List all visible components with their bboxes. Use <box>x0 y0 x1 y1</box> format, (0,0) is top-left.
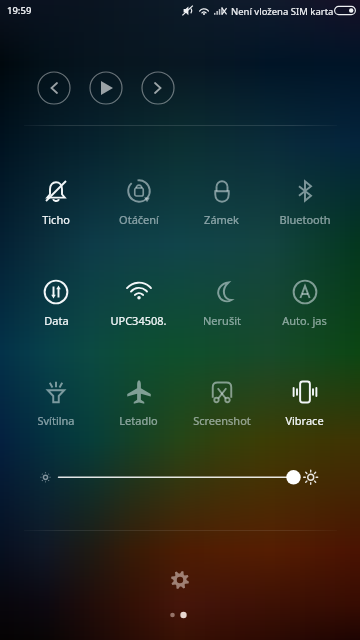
button[interactable]: Auto. jas <box>263 277 346 347</box>
button[interactable]: Bluetooth <box>263 176 346 246</box>
button[interactable]: Screenshot <box>180 377 263 447</box>
staticText: 19:59 <box>7 4 32 17</box>
button[interactable]: Nerušit <box>180 277 263 347</box>
staticText: Vibrace <box>285 413 324 428</box>
button[interactable]: UPC34508. <box>97 277 180 347</box>
staticText: Ticho <box>42 212 70 227</box>
button[interactable]: Vibrace <box>263 377 346 447</box>
staticText: Svítilna <box>37 413 75 428</box>
staticText: Letadlo <box>119 413 158 428</box>
staticText: Data <box>44 313 69 328</box>
button[interactable]: Svítilna <box>14 377 97 447</box>
button[interactable]: Letadlo <box>97 377 180 447</box>
button[interactable]: Next <box>142 72 174 104</box>
button[interactable]: Data <box>14 277 97 347</box>
button[interactable] <box>0 455 360 500</box>
staticText: Bluetooth <box>279 212 331 227</box>
staticText: Není vložena SIM karta <box>231 5 334 18</box>
staticText: UPC34508. <box>110 313 167 328</box>
staticText: Auto. jas <box>282 313 327 328</box>
button[interactable]: Zámek <box>180 176 263 246</box>
button[interactable]: Previous <box>38 72 70 104</box>
button[interactable]: Ticho <box>14 176 97 246</box>
staticText: Zámek <box>204 212 239 227</box>
staticText: Nerušit <box>203 313 241 328</box>
button[interactable]: Settings <box>162 562 198 598</box>
staticText: Screenshot <box>193 413 251 428</box>
button[interactable]: Otáčení <box>97 176 180 246</box>
staticText: Otáčení <box>119 212 159 227</box>
button[interactable]: Play <box>90 72 122 104</box>
